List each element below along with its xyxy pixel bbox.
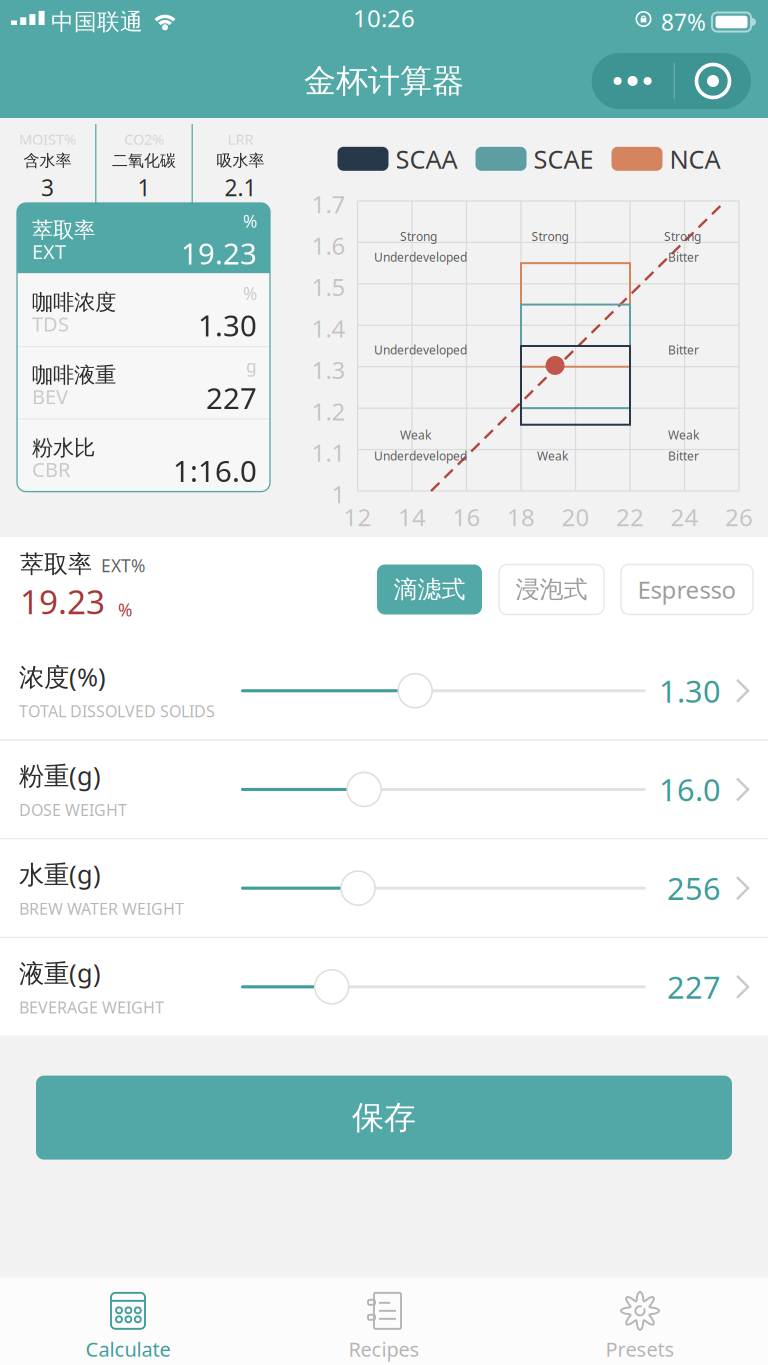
- staticText: MOIST%: [19, 129, 76, 149]
- staticText: Weak: [537, 448, 568, 464]
- staticText: 227: [206, 378, 257, 417]
- staticText: Underdeveloped: [374, 342, 467, 358]
- staticText: Strong: [531, 228, 568, 244]
- staticText: LRR: [227, 129, 253, 149]
- staticText: Underdeveloped: [374, 249, 467, 265]
- button[interactable]: Calculate: [0, 1284, 256, 1362]
- staticText: 16.0: [659, 769, 721, 810]
- staticText: 1: [137, 172, 150, 203]
- staticText: 1.5: [311, 271, 345, 303]
- staticText: 20: [561, 501, 589, 533]
- staticText: 1.30: [659, 670, 721, 711]
- staticText: BEVERAGE WEIGHT: [19, 996, 164, 1018]
- staticText: 256: [667, 868, 721, 908]
- staticText: Espresso: [637, 574, 736, 605]
- button[interactable]: 粉重(g): [0, 741, 768, 838]
- staticText: 中国联通: [51, 8, 143, 36]
- staticText: Presets: [605, 1336, 674, 1362]
- staticText: CO2%: [124, 129, 164, 149]
- staticText: Bitter: [668, 448, 699, 464]
- staticText: 萃取率: [32, 217, 95, 243]
- staticText: 粉水比: [32, 435, 95, 461]
- staticText: 22: [616, 501, 644, 533]
- staticText: 粉重(g): [19, 758, 101, 792]
- staticText: NCA: [669, 142, 720, 176]
- staticText: BREW WATER WEIGHT: [19, 898, 184, 919]
- staticText: 含水率: [23, 151, 71, 171]
- staticText: 87%: [661, 7, 706, 37]
- staticText: Calculate: [85, 1336, 170, 1362]
- staticText: 18: [507, 501, 535, 533]
- button[interactable]: 浓度(%): [0, 642, 768, 739]
- staticText: 吸水率: [216, 151, 264, 171]
- staticText: 浓度(%): [19, 660, 106, 693]
- staticText: 1.1: [311, 437, 345, 468]
- button[interactable]: 液重(g): [0, 938, 768, 1036]
- button[interactable]: Record: [675, 53, 751, 109]
- staticText: 19.23: [181, 233, 257, 272]
- button[interactable]: 水重(g): [0, 839, 768, 937]
- staticText: Strong: [400, 228, 437, 244]
- staticText: %: [118, 598, 132, 621]
- staticText: 浸泡式: [515, 575, 587, 604]
- staticText: Recipes: [348, 1336, 419, 1362]
- staticText: 咖啡浓度: [32, 289, 116, 315]
- staticText: 金杯计算器: [304, 61, 464, 101]
- staticText: Underdeveloped: [374, 448, 467, 464]
- staticText: 1.3: [311, 354, 345, 386]
- staticText: Bitter: [668, 249, 699, 265]
- staticText: g: [246, 354, 257, 377]
- staticText: TDS: [32, 310, 69, 337]
- staticText: Strong: [664, 228, 701, 244]
- button[interactable]: Recipes: [256, 1284, 512, 1362]
- staticText: 滴滤式: [393, 575, 465, 604]
- staticText: 1.6: [311, 229, 345, 261]
- staticText: 萃取率: [20, 550, 92, 579]
- staticText: 1.7: [311, 188, 345, 220]
- staticText: EXT%: [101, 554, 145, 577]
- staticText: 19.23: [20, 579, 105, 623]
- staticText: 二氧化碳: [112, 151, 176, 171]
- staticText: 26: [725, 501, 753, 533]
- staticText: 1.2: [311, 395, 345, 427]
- staticText: 液重(g): [19, 956, 101, 989]
- staticText: Weak: [668, 427, 699, 443]
- staticText: 1.30: [198, 306, 257, 345]
- staticText: SCAE: [533, 142, 593, 176]
- staticText: 14: [398, 501, 426, 533]
- staticText: 12: [343, 501, 371, 533]
- staticText: 3: [41, 172, 54, 203]
- staticText: SCAA: [395, 142, 457, 176]
- staticText: 16: [452, 501, 480, 533]
- button[interactable]: Presets: [512, 1284, 768, 1362]
- staticText: DOSE WEIGHT: [19, 799, 127, 820]
- staticText: TOTAL DISSOLVED SOLIDS: [19, 700, 215, 722]
- staticText: EXT: [32, 238, 66, 265]
- staticText: 水重(g): [19, 857, 101, 891]
- staticText: 咖啡液重: [32, 362, 116, 388]
- button[interactable]: 浸泡式: [499, 564, 604, 614]
- staticText: 保存: [352, 1098, 416, 1137]
- staticText: 1: [331, 478, 345, 510]
- staticText: %: [243, 282, 257, 305]
- staticText: CBR: [32, 456, 70, 482]
- staticText: 1:16.0: [173, 451, 257, 490]
- staticText: 2.1: [224, 172, 256, 203]
- staticText: 10:26: [353, 2, 415, 34]
- staticText: %: [243, 209, 257, 232]
- button[interactable]: 保存: [36, 1076, 732, 1160]
- staticText: BEV: [32, 383, 68, 410]
- button[interactable]: Espresso: [621, 564, 753, 614]
- staticText: Bitter: [668, 342, 699, 358]
- staticText: 1.4: [311, 312, 345, 344]
- staticText: Weak: [400, 427, 431, 443]
- staticText: 227: [667, 966, 721, 1007]
- button[interactable]: More options: [592, 53, 674, 109]
- staticText: 24: [670, 501, 698, 533]
- button[interactable]: 滴滤式: [377, 564, 482, 614]
